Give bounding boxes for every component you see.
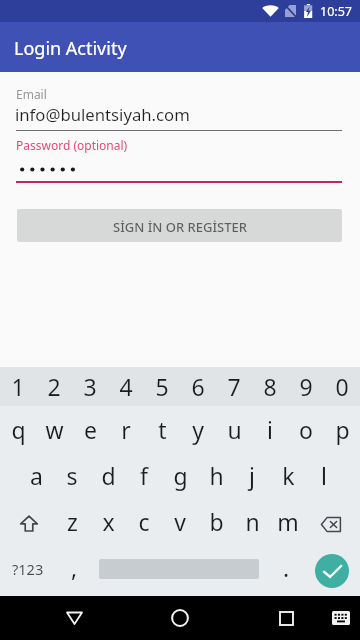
button[interactable]: c xyxy=(126,498,162,545)
button[interactable]: z xyxy=(54,498,90,545)
staticText: SİGN İN OR REGİSTER xyxy=(113,218,247,236)
staticText: ?123 xyxy=(12,559,44,579)
staticText: y xyxy=(192,414,204,445)
button[interactable]: Shift xyxy=(0,498,54,545)
staticText: 9 xyxy=(299,371,313,402)
staticText: v xyxy=(174,506,186,537)
button[interactable]: x xyxy=(90,498,126,545)
button[interactable]: 9 xyxy=(288,367,324,406)
staticText: t xyxy=(158,414,167,445)
staticText: j xyxy=(249,460,255,491)
button[interactable]: b xyxy=(198,498,234,545)
staticText: Login Activity xyxy=(14,36,127,61)
button[interactable]: Backspace xyxy=(306,498,360,545)
button[interactable]: Recents xyxy=(264,596,308,640)
button[interactable]: 0 xyxy=(324,367,360,406)
button[interactable]: Email field xyxy=(16,82,342,131)
button[interactable]: Password field xyxy=(16,134,342,183)
staticText: u xyxy=(227,414,242,445)
staticText: 5 xyxy=(155,371,169,402)
button[interactable]: q xyxy=(0,406,36,452)
staticText: . xyxy=(283,552,290,583)
staticText: g xyxy=(173,460,188,491)
button[interactable]: e xyxy=(72,406,108,452)
button[interactable]: ?123 xyxy=(0,545,56,596)
button[interactable]: 5 xyxy=(144,367,180,406)
button[interactable]: w xyxy=(36,406,72,452)
button[interactable]: , xyxy=(56,545,92,596)
button[interactable]: n xyxy=(234,498,270,545)
staticText: z xyxy=(67,506,78,537)
button[interactable]: r xyxy=(108,406,144,452)
staticText: h xyxy=(209,460,224,491)
button[interactable]: SİGN İN OR REGİSTER xyxy=(17,209,342,242)
button[interactable]: f xyxy=(126,452,162,498)
staticText: 1 xyxy=(11,371,25,402)
staticText: q xyxy=(11,414,26,445)
button[interactable]: Back xyxy=(52,596,96,640)
button[interactable]: o xyxy=(288,406,324,452)
button[interactable]: t xyxy=(144,406,180,452)
button[interactable]: i xyxy=(252,406,288,452)
button[interactable]: 7 xyxy=(216,367,252,406)
button[interactable]: 4 xyxy=(108,367,144,406)
staticText: a xyxy=(30,460,43,491)
staticText: c xyxy=(138,506,150,537)
staticText: 8 xyxy=(263,371,277,402)
staticText: , xyxy=(71,552,78,583)
staticText: b xyxy=(209,506,224,537)
staticText: 3 xyxy=(83,371,97,402)
staticText: 7 xyxy=(227,371,241,402)
button[interactable]: 1 xyxy=(0,367,36,406)
staticText: s xyxy=(66,460,78,491)
staticText: n xyxy=(245,506,260,537)
staticText: 2 xyxy=(47,371,61,402)
staticText: 0 xyxy=(335,371,349,402)
staticText: f xyxy=(140,460,148,491)
staticText: info@bulentsiyah.com xyxy=(15,103,190,126)
button[interactable]: . xyxy=(268,545,304,596)
button[interactable]: g xyxy=(162,452,198,498)
staticText: o xyxy=(299,414,313,445)
button[interactable]: h xyxy=(198,452,234,498)
button[interactable]: Home xyxy=(158,596,202,640)
button[interactable]: Enter xyxy=(309,545,354,596)
staticText: 10:57 xyxy=(320,3,352,20)
staticText: Password (optional) xyxy=(16,137,128,153)
button[interactable]: d xyxy=(90,452,126,498)
staticText: r xyxy=(121,414,131,445)
button[interactable]: 3 xyxy=(72,367,108,406)
staticText: 6 xyxy=(191,371,205,402)
staticText: e xyxy=(84,414,97,445)
staticText: d xyxy=(101,460,116,491)
button[interactable]: a xyxy=(18,452,54,498)
button[interactable]: 8 xyxy=(252,367,288,406)
staticText: 4 xyxy=(119,371,133,402)
button[interactable]: k xyxy=(270,452,306,498)
staticText: Email xyxy=(16,86,47,102)
button[interactable]: y xyxy=(180,406,216,452)
button[interactable]: m xyxy=(270,498,306,545)
staticText: w xyxy=(45,414,64,445)
staticText: l xyxy=(321,460,327,491)
button[interactable]: u xyxy=(216,406,252,452)
staticText: x xyxy=(102,506,115,537)
button[interactable]: j xyxy=(234,452,270,498)
button[interactable]: s xyxy=(54,452,90,498)
button[interactable]: v xyxy=(162,498,198,545)
staticText: i xyxy=(267,414,273,445)
button[interactable]: Switch keyboard xyxy=(319,596,360,640)
staticText: p xyxy=(335,414,350,445)
staticText: k xyxy=(282,460,295,491)
button[interactable]: p xyxy=(324,406,360,452)
button[interactable]: 2 xyxy=(36,367,72,406)
staticText: m xyxy=(277,506,299,537)
button[interactable]: l xyxy=(306,452,342,498)
button[interactable]: 6 xyxy=(180,367,216,406)
